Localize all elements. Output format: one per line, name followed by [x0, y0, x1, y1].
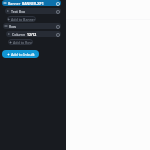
staticText: BANNER-XP1 [22, 1, 44, 6]
staticText: Column [12, 32, 26, 37]
button[interactable]: Text Box [5, 8, 61, 14]
button[interactable]: Add to Banner [7, 16, 36, 22]
staticText: Add to Banner [11, 17, 36, 22]
button[interactable]: Settings [55, 1, 60, 6]
staticText: Add to Row [13, 40, 33, 45]
staticText: Row [9, 24, 17, 29]
button[interactable]: Settings [55, 32, 60, 37]
staticText: Text Box [11, 9, 26, 14]
button[interactable]: Add to Row [8, 39, 33, 45]
button[interactable]: Column [6, 31, 61, 37]
button[interactable]: Add to Inbuilt [2, 50, 39, 58]
button[interactable]: Row [3, 23, 61, 29]
button[interactable]: Banner [2, 0, 61, 6]
button[interactable]: Settings [55, 24, 60, 29]
staticText: 12/12 [27, 32, 37, 37]
staticText: Add to Inbuilt [11, 52, 35, 57]
button[interactable]: Settings [55, 9, 60, 14]
staticText: Banner [8, 1, 21, 6]
